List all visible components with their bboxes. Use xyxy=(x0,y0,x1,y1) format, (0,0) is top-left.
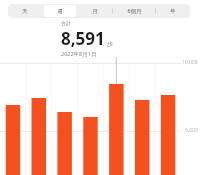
staticText: 年 xyxy=(170,8,176,15)
staticText: 10,000 xyxy=(182,59,198,66)
button[interactable]: 週 xyxy=(44,5,76,17)
button[interactable]: 年 xyxy=(157,5,189,17)
staticText: 8,591 xyxy=(61,27,105,50)
staticText: 週 xyxy=(57,8,63,15)
staticText: 歩 xyxy=(107,40,113,48)
button[interactable]: 6個月 xyxy=(114,5,154,17)
staticText: 合計 xyxy=(61,20,71,26)
staticText: 2022年8月1日 xyxy=(61,50,97,58)
staticText: 5,000 xyxy=(185,127,198,134)
button[interactable]: 天 xyxy=(9,5,41,17)
staticText: 月 xyxy=(92,8,98,15)
other: Weekly step count bar chart xyxy=(0,57,200,175)
button[interactable]: 月 xyxy=(79,5,111,17)
staticText: 6個月 xyxy=(127,7,142,15)
staticText: 天 xyxy=(22,8,28,15)
